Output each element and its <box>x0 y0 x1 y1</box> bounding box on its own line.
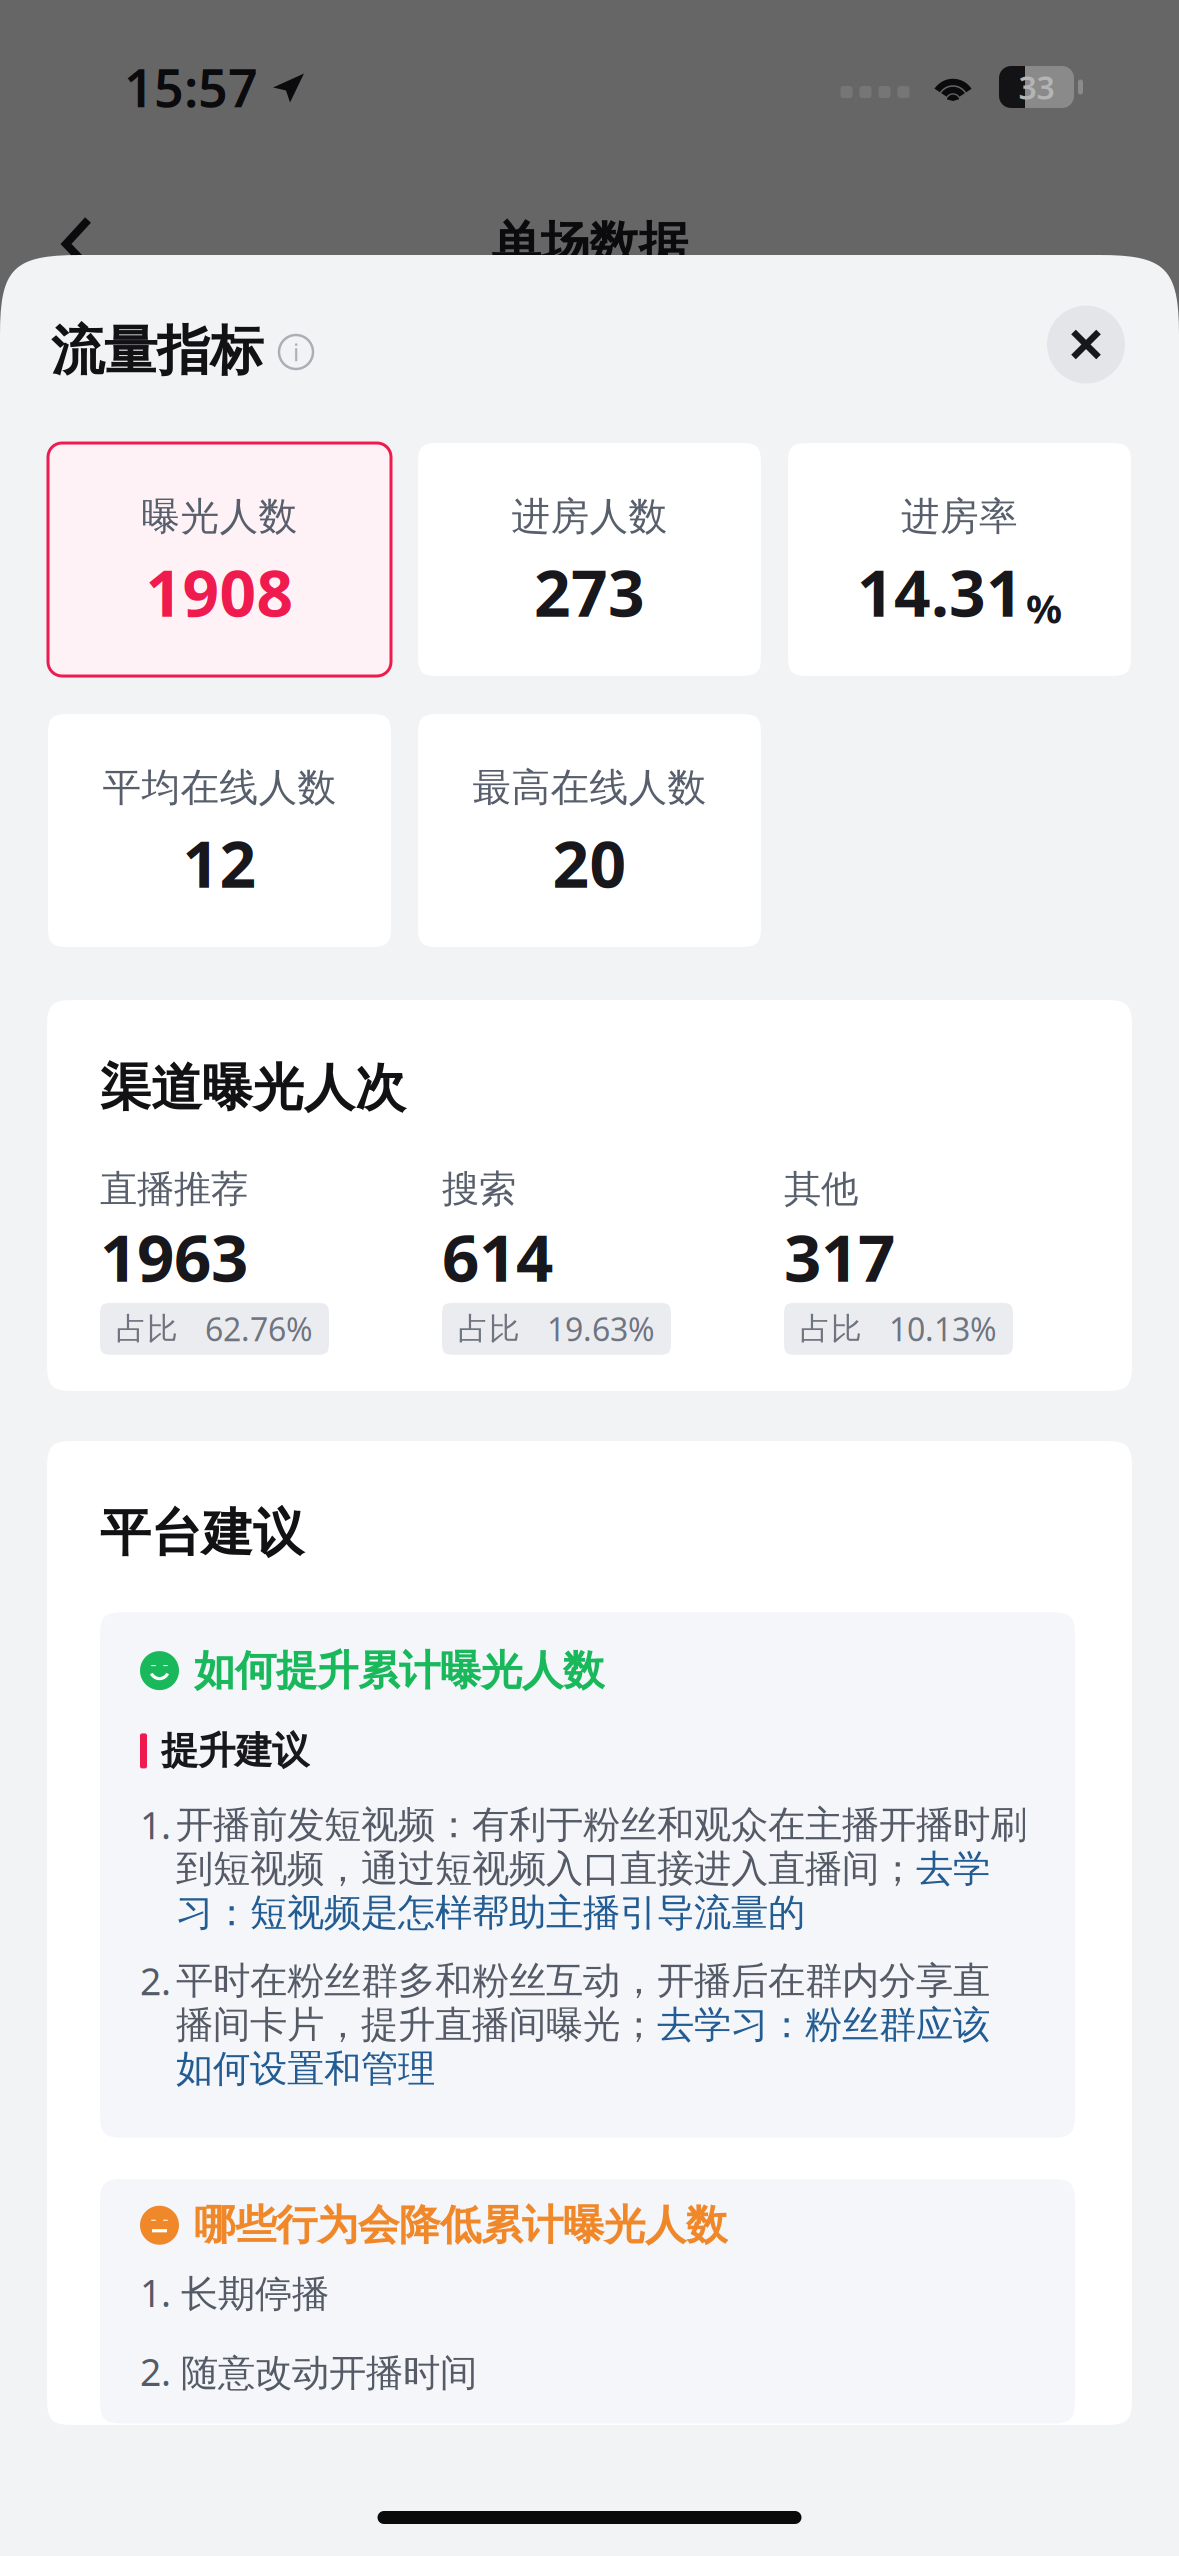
staticText: 2. <box>140 1956 171 2006</box>
staticText: 如何设置和管理 <box>176 2046 435 2092</box>
staticText: 62.76% <box>205 1308 313 1350</box>
staticText: 15:57 <box>124 52 258 122</box>
button[interactable]: Close <box>1047 305 1125 392</box>
staticText: 占比 <box>458 1310 520 1348</box>
staticText: % <box>1026 581 1062 634</box>
staticText: 平均在线人数 <box>102 764 336 811</box>
staticText: 曝光人数 <box>141 493 297 540</box>
staticText: 单场数据 <box>491 215 687 275</box>
staticText: 习：短视频是怎样帮助主播引导流量的 <box>176 1890 805 1936</box>
staticText: 到短视频，通过短视频入口直接进入直播间； <box>176 1846 916 1892</box>
staticText: 渠道曝光人次 <box>100 1057 406 1119</box>
staticText: 1963 <box>100 1213 248 1300</box>
staticText: 33 <box>1018 66 1054 108</box>
staticText: 10.13% <box>889 1308 997 1350</box>
staticText: 其他 <box>784 1166 858 1212</box>
staticText: 20 <box>552 820 626 905</box>
staticText: 去学习：粉丝群应该 <box>657 2002 990 2048</box>
staticText: 直播推荐 <box>100 1166 248 1212</box>
staticText: 进房率 <box>901 493 1018 540</box>
button[interactable]: 曝光人数 <box>48 443 391 676</box>
staticText: 播间卡片，提升直播间曝光； <box>176 2002 657 2048</box>
staticText: 1908 <box>145 549 293 634</box>
staticText: 12 <box>182 820 256 905</box>
button[interactable]: 进房率 <box>788 443 1131 676</box>
staticText: 去学 <box>916 1846 990 1892</box>
staticText: 平台建议 <box>100 1502 304 1564</box>
staticText: 开播前发短视频：有利于粉丝和观众在主播开播时刷 <box>176 1802 1027 1848</box>
staticText: 14.31 <box>857 549 1023 634</box>
staticText: 1. 长期停播 <box>140 2268 329 2317</box>
staticText: 273 <box>534 549 645 634</box>
staticText: 平时在粉丝群多和粉丝互动，开播后在群内分享直 <box>176 1958 990 2004</box>
staticText: 流量指标 <box>51 318 263 384</box>
staticText: 2. 随意改动开播时间 <box>140 2347 477 2396</box>
button[interactable]: 进房人数 <box>418 443 761 676</box>
staticText: 占比 <box>800 1310 862 1348</box>
staticText: 进房人数 <box>511 493 667 540</box>
staticText: 19.63% <box>547 1308 655 1350</box>
staticText: 1. <box>140 1800 171 1850</box>
button[interactable]: 最高在线人数 <box>418 714 761 947</box>
staticText: 如何提升累计曝光人数 <box>194 1645 604 1696</box>
staticText: 提升建议 <box>161 1728 309 1774</box>
staticText: 最高在线人数 <box>472 764 706 811</box>
staticText: 搜索 <box>442 1166 516 1212</box>
staticText: 317 <box>784 1213 895 1300</box>
staticText: i <box>293 336 299 368</box>
staticText: 614 <box>442 1213 553 1300</box>
staticText: 占比 <box>116 1310 178 1348</box>
button[interactable]: 平均在线人数 <box>48 714 391 947</box>
staticText: 哪些行为会降低累计曝光人数 <box>194 2200 727 2251</box>
